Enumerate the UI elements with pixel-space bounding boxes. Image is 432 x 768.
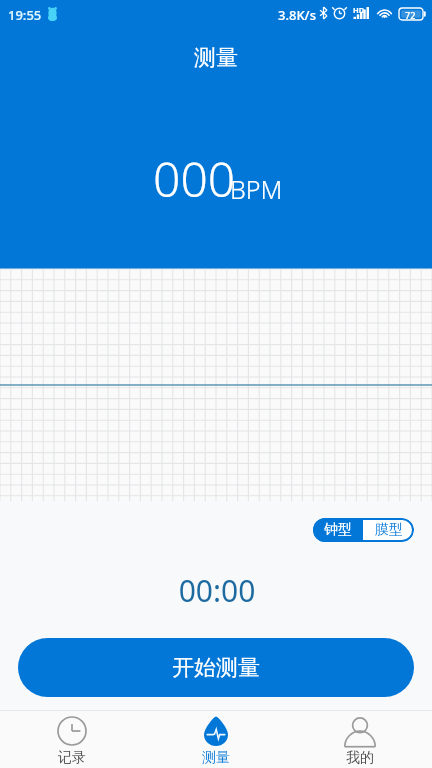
staticText: 3.8K/s xyxy=(278,6,316,24)
button[interactable]: 钟型 xyxy=(313,518,363,542)
staticText: BPM xyxy=(230,172,283,206)
staticText: 记录 xyxy=(58,749,86,767)
staticText: 000 xyxy=(153,146,236,211)
staticText: 钟型 xyxy=(324,521,352,539)
staticText: 00:00 xyxy=(1,570,432,611)
staticText: 开始测量 xyxy=(172,654,260,682)
staticText: 测量 xyxy=(202,749,230,767)
staticText: 膜型 xyxy=(375,521,403,539)
button[interactable]: 开始测量 xyxy=(18,638,414,697)
staticText: 72 xyxy=(405,9,416,21)
staticText: 测量 xyxy=(194,44,238,72)
button[interactable]: 我的 xyxy=(288,711,432,768)
staticText: 我的 xyxy=(346,749,374,767)
button[interactable]: 膜型 xyxy=(363,518,414,542)
staticText: HD xyxy=(353,5,365,15)
button[interactable]: 记录 xyxy=(0,711,144,768)
button[interactable]: 测量 xyxy=(144,711,288,768)
staticText: 19:55 xyxy=(8,6,42,24)
